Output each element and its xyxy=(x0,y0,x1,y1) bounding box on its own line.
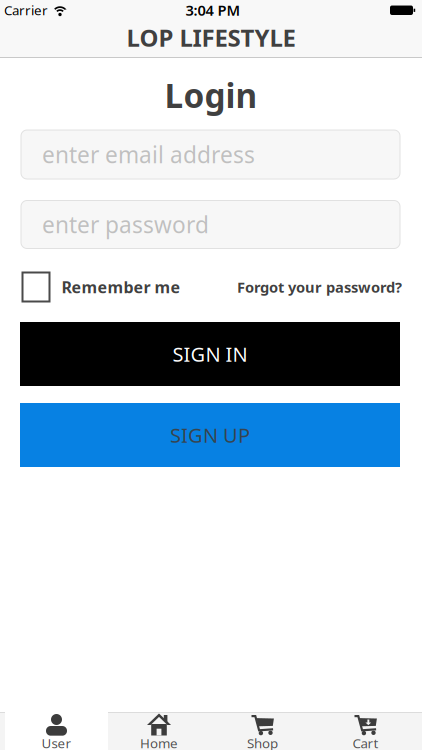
staticText: Cart xyxy=(352,734,378,750)
staticText: Shop xyxy=(247,734,278,750)
staticText: 3:04 PM xyxy=(185,0,240,20)
staticText: Home xyxy=(140,734,178,750)
staticText: Carrier xyxy=(4,1,48,19)
staticText: Login xyxy=(164,73,257,117)
staticText: User xyxy=(41,734,71,750)
staticText: SIGN UP xyxy=(170,422,250,448)
staticText: Remember me xyxy=(61,276,180,298)
staticText: enter password xyxy=(42,209,209,239)
staticText: LOP LIFESTYLE xyxy=(126,22,295,53)
staticText: enter email address xyxy=(42,139,255,169)
staticText: SIGN IN xyxy=(172,341,247,367)
staticText: Forgot your password? xyxy=(237,277,402,297)
